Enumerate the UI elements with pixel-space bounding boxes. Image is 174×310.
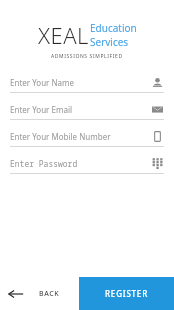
button[interactable]: Enter Your Email [10,100,164,127]
staticText: Enter Password [10,158,151,169]
staticText: Education [90,21,137,35]
staticText: ADMISSIONS SIMPLIFIED [51,53,123,60]
staticText: Enter Your Name [10,77,151,88]
other: Mobile number [152,131,163,142]
other: Back [8,286,24,302]
other: Email [152,104,163,115]
staticText: Services [90,35,129,49]
staticText: REGISTER [105,288,148,299]
button[interactable]: Back [0,277,79,310]
staticText: BACK [39,289,60,299]
button[interactable]: REGISTER [79,277,174,310]
staticText: Enter Your Email [10,104,151,115]
other: Name [152,77,163,88]
staticText: XEAL [38,20,89,50]
other: Password [152,158,163,169]
button[interactable]: Enter Password [10,154,164,181]
staticText: Enter Your Mobile Number [10,131,151,142]
button[interactable]: Enter Your Mobile Number [10,127,164,154]
button[interactable]: Enter Your Name [10,73,164,100]
